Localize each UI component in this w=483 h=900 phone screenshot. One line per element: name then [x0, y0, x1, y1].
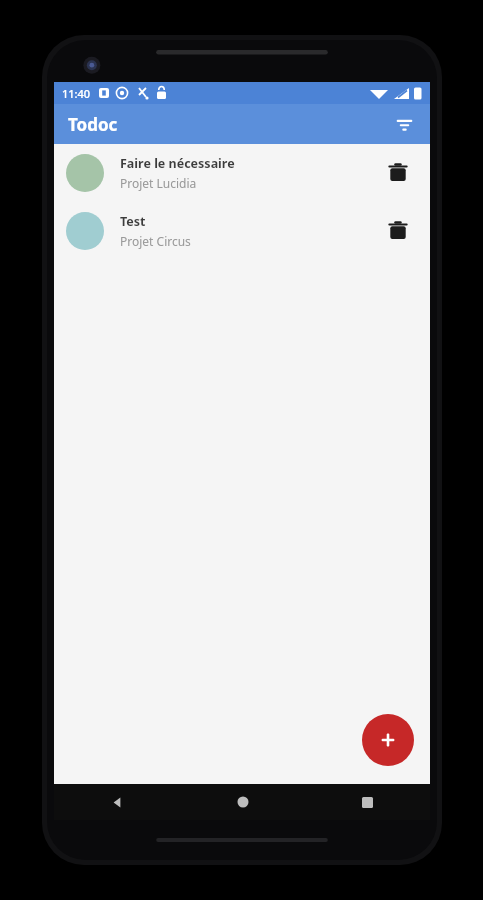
button[interactable]: Delete task [378, 211, 418, 251]
button[interactable]: Home [180, 784, 305, 820]
staticText: Test [120, 213, 146, 230]
staticText: Todoc [68, 113, 118, 136]
button[interactable]: Filter tasks [386, 106, 422, 142]
button[interactable]: Faire le nécessaire [54, 144, 430, 202]
button[interactable]: Test [54, 202, 430, 260]
button[interactable]: Delete task [378, 153, 418, 193]
staticText: Faire le nécessaire [120, 155, 235, 172]
staticText: 11:40 [62, 86, 91, 101]
button[interactable]: Back [54, 784, 180, 820]
button[interactable]: Recent apps [305, 784, 430, 820]
staticText: Projet Circus [120, 233, 191, 249]
staticText: Projet Lucidia [120, 175, 197, 191]
button[interactable]: Add task [362, 714, 414, 766]
